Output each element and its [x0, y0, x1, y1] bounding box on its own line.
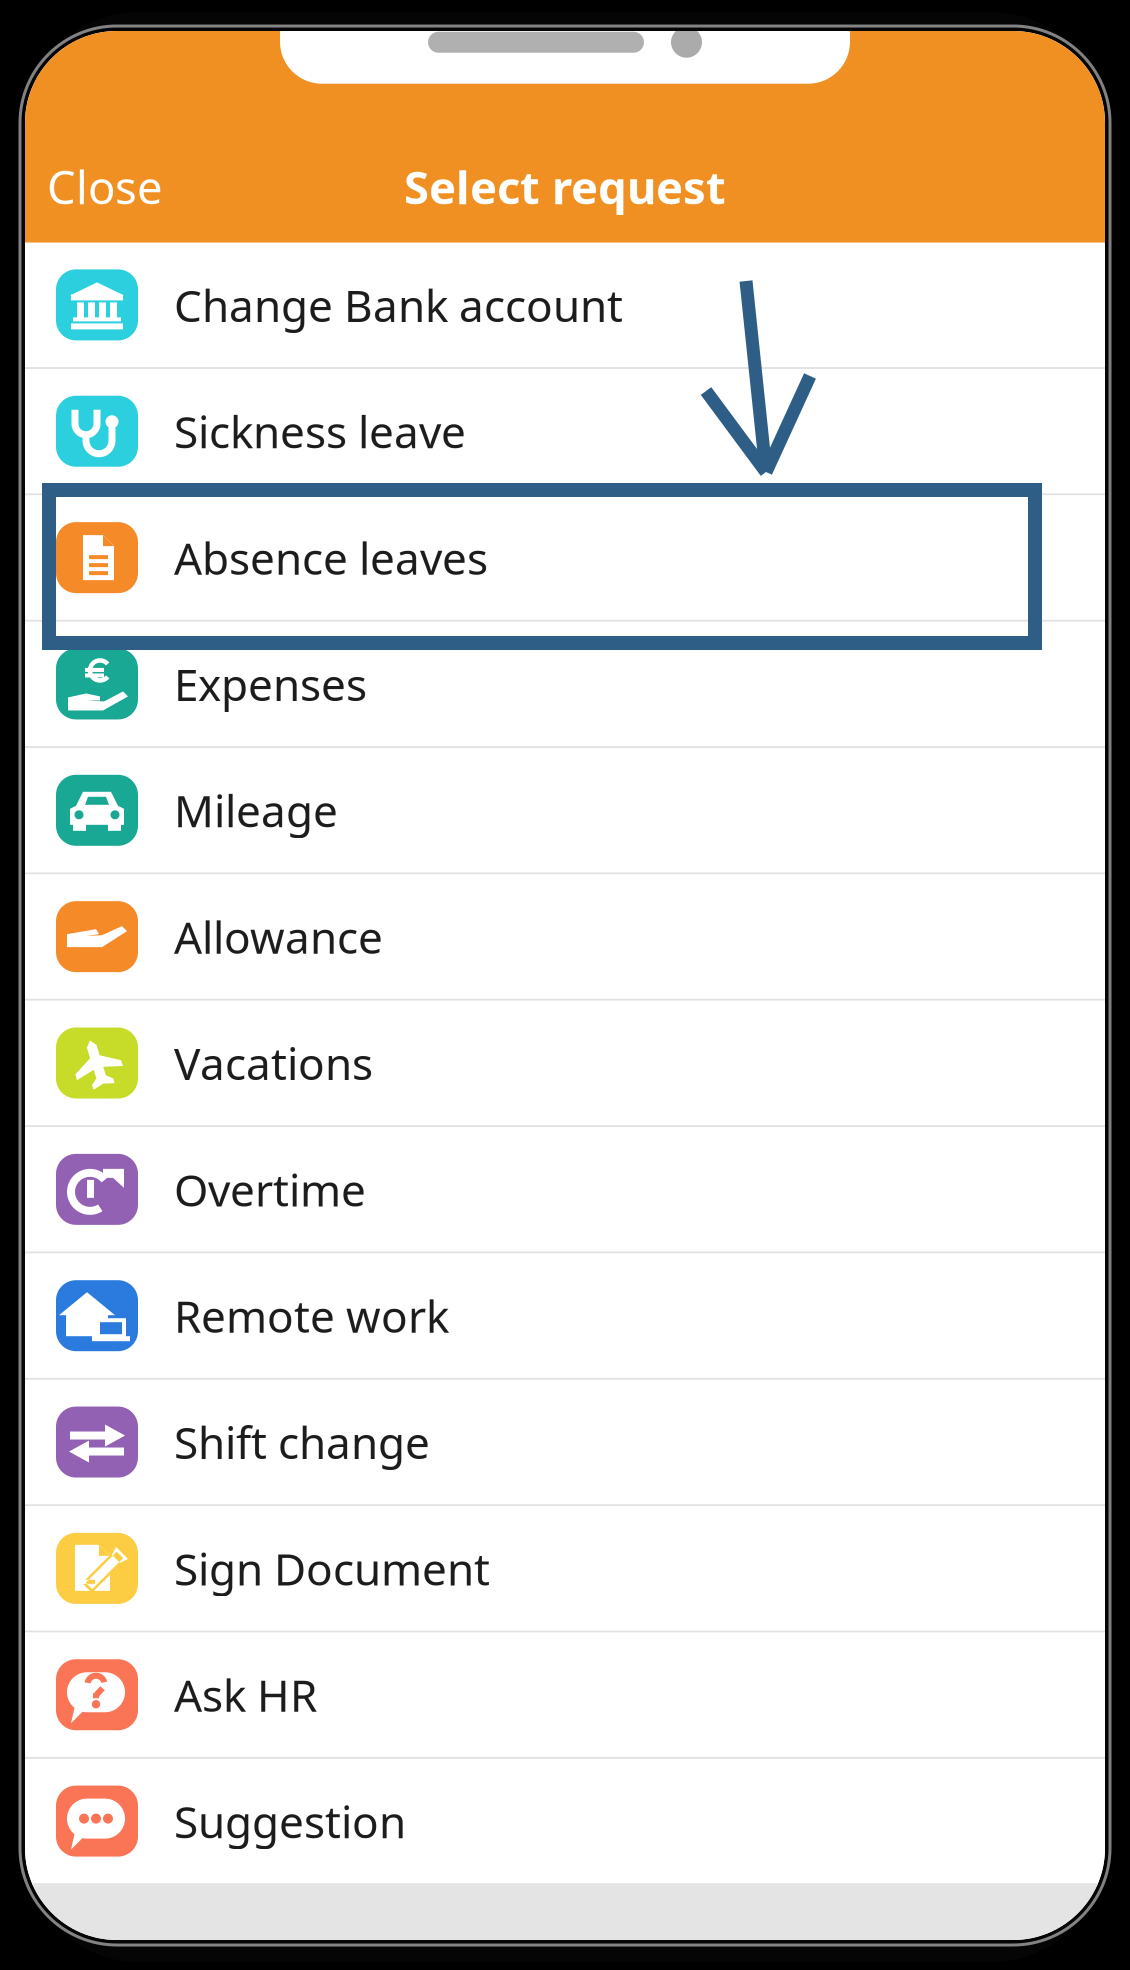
button[interactable]: Absence leaves	[25, 495, 1105, 622]
staticText: Close	[47, 157, 163, 217]
staticText: Select request	[404, 157, 726, 217]
staticText: Sickness leave	[174, 402, 466, 460]
button[interactable]: Close	[25, 152, 277, 222]
staticText: Allowance	[174, 907, 383, 966]
button[interactable]: Mileage	[25, 748, 1105, 874]
button[interactable]: Vacations	[25, 1001, 1105, 1127]
staticText: Ask HR	[174, 1665, 317, 1724]
button[interactable]: Allowance	[25, 874, 1105, 1001]
staticText: Shift change	[174, 1413, 430, 1471]
button[interactable]: Sign Document	[25, 1506, 1105, 1632]
staticText: Suggestion	[174, 1792, 406, 1850]
button[interactable]: Change Bank account	[25, 243, 1105, 369]
staticText: Remote work	[174, 1286, 449, 1345]
button[interactable]: Shift change	[25, 1380, 1105, 1506]
staticText: Absence leaves	[174, 528, 488, 587]
staticText: Expenses	[174, 655, 367, 713]
button[interactable]: Suggestion	[25, 1759, 1105, 1885]
button[interactable]: Ask HR	[25, 1633, 1105, 1759]
staticText: Sign Document	[174, 1539, 490, 1598]
button[interactable]: Overtime	[25, 1127, 1105, 1253]
button[interactable]: Expenses	[25, 622, 1105, 748]
staticText: Vacations	[174, 1034, 373, 1092]
staticText: Change Bank account	[174, 276, 623, 334]
button[interactable]: Remote work	[25, 1253, 1105, 1380]
staticText: Mileage	[174, 781, 338, 839]
staticText: Overtime	[174, 1160, 366, 1218]
button[interactable]: Sickness leave	[25, 369, 1105, 495]
